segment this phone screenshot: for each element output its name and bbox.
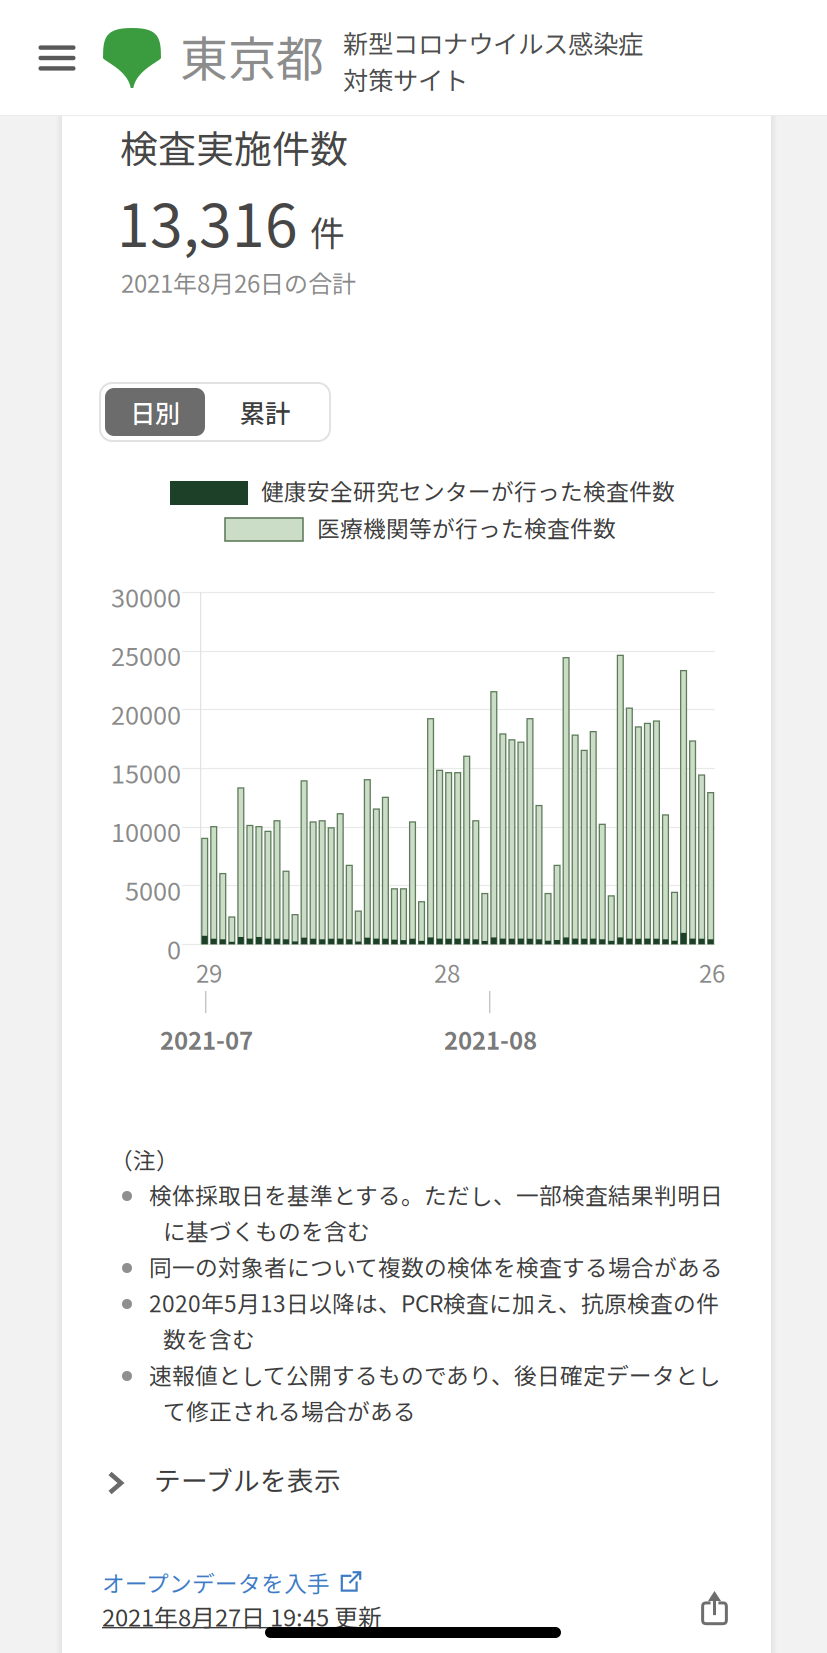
staticText: 検体採取日を基準とする。ただし、一部検査結果判明日 (149, 1178, 723, 1211)
staticText: （注） (110, 1143, 179, 1176)
staticText: 2021年8月27日 19:45 更新 (102, 1599, 382, 1633)
staticText: 同一の対象者について複数の検体を検査する場合がある (149, 1250, 723, 1283)
staticText: 13,316 (117, 179, 298, 264)
staticText: 健康安全研究センターが行った検査件数 (261, 474, 675, 507)
staticText: 速報値として公開するものであり、後日確定データとし (149, 1358, 721, 1391)
staticText: 件 (310, 206, 345, 256)
staticText: 29 (196, 955, 222, 990)
staticText: 15000 (111, 754, 181, 791)
button[interactable]: テーブルを表示 (108, 1454, 341, 1504)
staticText: 26 (699, 955, 725, 990)
staticText: 25000 (111, 637, 181, 673)
staticText: テーブルを表示 (154, 1460, 341, 1498)
staticText: 検査実施件数 (120, 119, 348, 174)
button[interactable]: オープンデータを入手 (102, 1566, 361, 1599)
staticText: 5000 (125, 871, 181, 908)
staticText: 日別 (130, 394, 180, 430)
staticText: 2021-07 (160, 1022, 253, 1057)
staticText: 20000 (111, 695, 181, 732)
button[interactable]: 東京都トップへ (97, 22, 167, 94)
staticText: に基づくものを含む (163, 1214, 370, 1247)
staticText: て修正される場合がある (163, 1394, 416, 1427)
staticText: オープンデータを入手 (102, 1566, 330, 1599)
staticText: 30000 (111, 578, 181, 615)
staticText: 医療機関等が行った検査件数 (317, 511, 616, 544)
staticText: 新型コロナウイルス感染症 対策サイト (343, 24, 643, 97)
staticText: 東京都 (180, 21, 324, 90)
button[interactable]: 日別 (100, 383, 330, 441)
staticText: 2021-08 (444, 1022, 537, 1057)
staticText: 10000 (111, 813, 181, 849)
button[interactable]: メニュー (22, 27, 92, 89)
staticText: 累計 (240, 394, 290, 430)
staticText: 2021年8月26日の合計 (121, 265, 356, 300)
staticText: 数を含む (163, 1322, 255, 1355)
staticText: 0 (167, 930, 181, 967)
staticText: 2020年5月13日以降は、PCR検査に加え、抗原検査の件 (149, 1286, 719, 1319)
button[interactable]: 共有 (690, 1584, 740, 1634)
staticText: 28 (434, 955, 460, 990)
